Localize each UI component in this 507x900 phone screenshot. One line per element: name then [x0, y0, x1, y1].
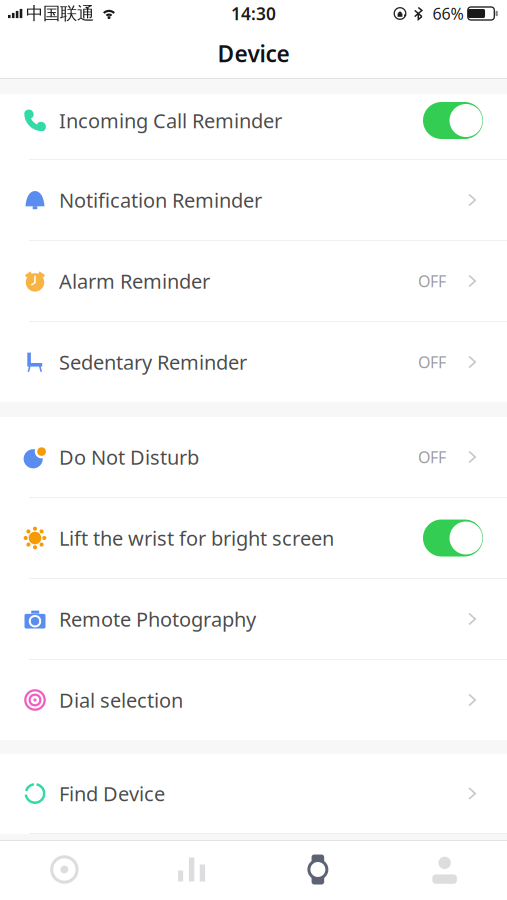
- staticText: 66%: [432, 3, 463, 24]
- staticText: Remote Photography: [59, 606, 256, 632]
- button[interactable]: Dial selection: [0, 660, 507, 740]
- staticText: 14:30: [231, 2, 276, 25]
- staticText: OFF: [418, 270, 446, 292]
- staticText: Sedentary Reminder: [59, 349, 247, 375]
- staticText: 中国联通: [26, 3, 94, 24]
- staticText: Notification Reminder: [59, 187, 262, 213]
- button[interactable]: Sedentary Reminder: [0, 322, 507, 402]
- staticText: Lift the wrist for bright screen: [59, 525, 334, 551]
- button[interactable]: Device: [253, 841, 380, 900]
- staticText: Device: [217, 38, 289, 68]
- staticText: Do Not Disturb: [59, 444, 199, 470]
- staticText: Find Device: [59, 780, 165, 807]
- button[interactable]: Statistics: [127, 841, 254, 900]
- button[interactable]: Alarm Reminder: [0, 241, 507, 321]
- button[interactable]: Lift the wrist for bright screen: [0, 498, 507, 578]
- button[interactable]: Profile: [380, 841, 507, 900]
- staticText: Alarm Reminder: [59, 268, 210, 294]
- staticText: Incoming Call Reminder: [59, 107, 282, 134]
- button[interactable]: Do Not Disturb: [0, 417, 507, 497]
- button[interactable]: Incoming Call Reminder: [0, 94, 507, 159]
- staticText: Dial selection: [59, 687, 183, 713]
- button[interactable]: Notification Reminder: [0, 160, 507, 240]
- staticText: OFF: [418, 446, 446, 468]
- staticText: OFF: [418, 351, 446, 373]
- button[interactable]: Find Device: [0, 754, 507, 833]
- button[interactable]: Remote Photography: [0, 579, 507, 659]
- button[interactable]: Activity: [0, 841, 127, 900]
